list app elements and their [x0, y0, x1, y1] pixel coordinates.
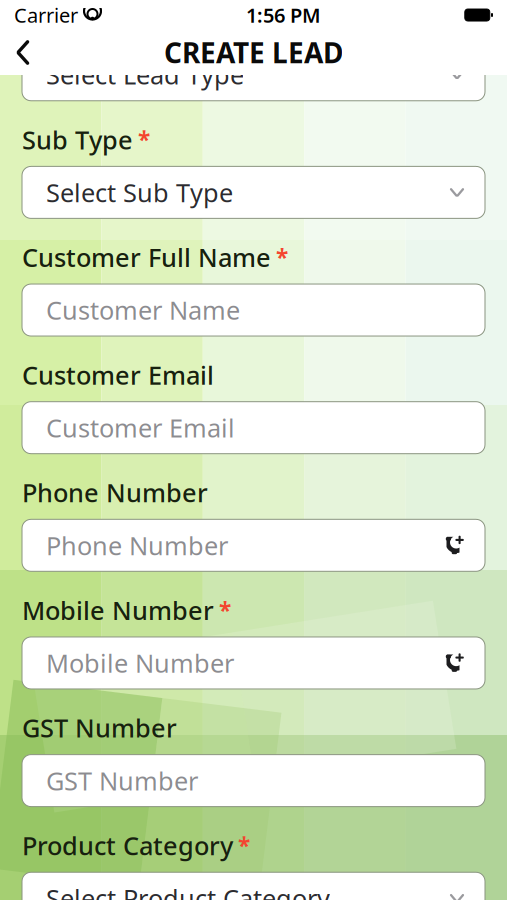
staticText: GST Number	[46, 764, 198, 797]
button[interactable]: Customer Full Name	[22, 240, 485, 336]
staticText: Select Lead Type	[46, 58, 244, 91]
staticText: Sub Type	[22, 123, 133, 156]
staticText: Customer Full Name	[22, 240, 271, 274]
staticText: Mobile Number	[22, 593, 214, 627]
staticText: GST Number	[22, 711, 177, 745]
staticText: *	[138, 124, 150, 155]
staticText: *	[276, 242, 288, 272]
staticText: Mobile Number	[46, 646, 234, 680]
staticText: Product Category	[22, 829, 233, 862]
staticText: CREATE LEAD	[164, 34, 343, 71]
staticText: Select Sub Type	[46, 176, 233, 209]
staticText: *	[238, 830, 250, 860]
staticText: Customer Email	[22, 358, 214, 392]
staticText: Select Product Category	[46, 881, 330, 900]
button[interactable]: Lead Type	[22, 5, 485, 101]
button[interactable]: GST Number	[22, 711, 485, 807]
staticText: 1:56 PM	[246, 2, 321, 28]
button[interactable]: Mobile Number	[22, 593, 485, 689]
staticText: Lead Type	[22, 5, 146, 39]
staticText: Customer Name	[46, 293, 240, 327]
button[interactable]: Product Category	[22, 829, 485, 900]
button[interactable]: Sub Type	[22, 123, 485, 218]
staticText: Phone Number	[22, 476, 208, 509]
button[interactable]: Phone Number	[22, 476, 485, 571]
staticText: Customer Email	[46, 411, 235, 444]
button[interactable]: Back	[0, 30, 46, 74]
staticText: Carrier	[14, 2, 78, 28]
staticText: Phone Number	[46, 528, 228, 562]
staticText: *	[219, 595, 231, 625]
button[interactable]: Customer Email	[22, 358, 485, 454]
